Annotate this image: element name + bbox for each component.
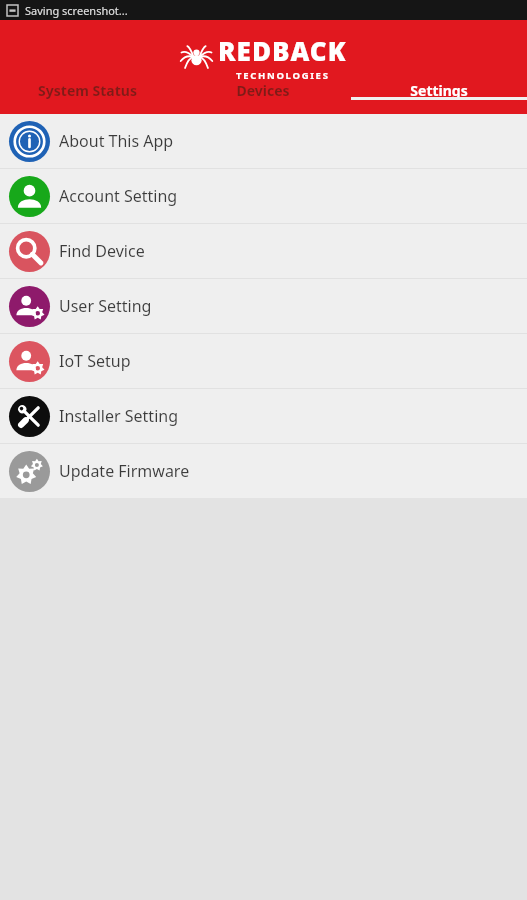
button[interactable]: System Status — [0, 81, 175, 100]
button[interactable]: Settings — [351, 81, 527, 100]
button[interactable]: Update Firmware — [0, 444, 527, 498]
staticText: Update Firmware — [59, 460, 190, 482]
button[interactable]: User Setting — [0, 279, 527, 333]
staticText: About This App — [59, 130, 174, 152]
staticText: System Status — [38, 81, 137, 100]
staticText: Account Setting — [59, 185, 178, 207]
staticText: TECHNOLOGIES — [236, 69, 330, 82]
button[interactable]: Account Setting — [0, 169, 527, 223]
staticText: Devices — [236, 81, 290, 100]
button[interactable]: IoT Setup — [0, 334, 527, 388]
staticText: IoT Setup — [59, 350, 131, 372]
button[interactable]: About This App — [0, 114, 527, 168]
button[interactable]: Devices — [175, 81, 351, 100]
staticText: Settings — [410, 81, 468, 100]
button[interactable]: Find Device — [0, 224, 527, 278]
staticText: REDBACK — [218, 33, 347, 68]
staticText: User Setting — [59, 295, 152, 317]
staticText: Saving screenshot... — [25, 3, 128, 18]
staticText: Find Device — [59, 240, 145, 262]
staticText: Installer Setting — [59, 405, 178, 427]
button[interactable]: Installer Setting — [0, 389, 527, 443]
